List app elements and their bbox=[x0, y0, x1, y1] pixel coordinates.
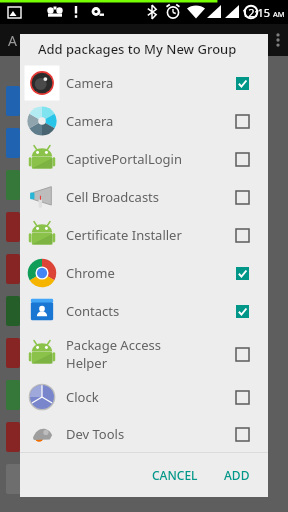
staticText: Certificate Installer bbox=[66, 226, 232, 244]
staticText: Chrome bbox=[66, 264, 232, 282]
button[interactable]: ADD bbox=[214, 461, 260, 489]
staticText: Clock bbox=[66, 388, 232, 406]
staticText: Dev Tools bbox=[66, 425, 232, 443]
staticText: Contacts bbox=[66, 302, 232, 320]
staticText: ADD bbox=[224, 467, 250, 483]
button[interactable]: Contacts bbox=[20, 292, 268, 330]
button[interactable]: Certificate Installer bbox=[20, 216, 268, 254]
staticText: Package Access Helper bbox=[66, 336, 232, 372]
staticText: Add packages to My New Group bbox=[38, 40, 237, 58]
button[interactable]: Clock bbox=[20, 378, 268, 416]
staticText: A bbox=[8, 31, 17, 50]
button[interactable]: Dev Tools bbox=[20, 416, 268, 452]
button[interactable]: Chrome bbox=[20, 254, 268, 292]
staticText: CaptivePortalLogin bbox=[66, 150, 232, 168]
button[interactable]: Package Access Helper bbox=[20, 330, 268, 378]
button[interactable]: Cell Broadcasts bbox=[20, 178, 268, 216]
button[interactable]: CaptivePortalLogin bbox=[20, 140, 268, 178]
staticText: Cell Broadcasts bbox=[66, 188, 232, 206]
button[interactable]: CANCEL bbox=[142, 461, 208, 489]
staticText: CANCEL bbox=[152, 467, 198, 483]
staticText: Camera bbox=[66, 74, 232, 92]
staticText: 12:15 bbox=[242, 5, 271, 20]
staticText: Camera bbox=[66, 112, 232, 130]
staticText: AM bbox=[271, 9, 285, 19]
button[interactable]: Camera bbox=[20, 102, 268, 140]
button[interactable]: Camera bbox=[20, 64, 268, 102]
